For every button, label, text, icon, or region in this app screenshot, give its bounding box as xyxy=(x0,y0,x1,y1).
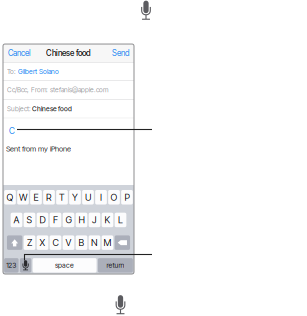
staticText: Z xyxy=(27,237,32,248)
staticText: return xyxy=(106,261,124,270)
staticText: stefanis@apple.com xyxy=(48,86,108,94)
button[interactable]: Delete xyxy=(115,235,130,250)
staticText: T xyxy=(59,192,65,203)
staticText: Y xyxy=(72,192,78,203)
button[interactable]: Y xyxy=(69,190,81,204)
staticText: U xyxy=(85,192,91,203)
button[interactable]: D xyxy=(37,213,48,227)
button[interactable]: B xyxy=(76,235,87,250)
staticText: I xyxy=(100,192,102,203)
button[interactable]: U xyxy=(82,190,94,204)
staticText: Cancel xyxy=(8,48,31,58)
button[interactable]: X xyxy=(37,235,48,250)
staticText: Chinese food xyxy=(31,105,72,113)
staticText: V xyxy=(65,237,71,248)
staticText: Sent from my iPhone xyxy=(6,144,71,153)
staticText: L xyxy=(118,214,123,226)
button[interactable]: Shift xyxy=(7,235,22,250)
button[interactable]: S xyxy=(24,213,35,227)
staticText: J xyxy=(92,214,97,226)
staticText: X xyxy=(39,237,45,248)
staticText: W xyxy=(19,192,27,203)
staticText: D xyxy=(39,214,45,226)
button[interactable]: P xyxy=(121,190,133,204)
staticText: E xyxy=(33,192,38,203)
button[interactable]: L xyxy=(115,213,126,227)
button[interactable]: Z xyxy=(24,235,35,250)
staticText: R xyxy=(46,192,52,203)
staticText: B xyxy=(78,237,84,248)
button[interactable]: E xyxy=(30,190,42,204)
button[interactable]: V xyxy=(63,235,74,250)
staticText: To: xyxy=(7,68,16,76)
button[interactable]: J xyxy=(89,213,100,227)
button[interactable]: 123 xyxy=(4,258,19,273)
button[interactable]: Dictation xyxy=(20,258,31,273)
button[interactable]: R xyxy=(43,190,55,204)
button[interactable]: N xyxy=(89,235,100,250)
button[interactable]: return xyxy=(98,258,133,273)
staticText: Cc/Bcc, From: xyxy=(7,86,48,94)
button[interactable]: C xyxy=(50,235,61,250)
button[interactable]: H xyxy=(76,213,87,227)
button[interactable]: W xyxy=(17,190,29,204)
staticText: K xyxy=(104,214,110,226)
staticText: Send xyxy=(112,48,129,58)
staticText: A xyxy=(13,214,19,226)
button[interactable]: Q xyxy=(4,190,16,204)
button[interactable]: T xyxy=(56,190,68,204)
button[interactable]: space xyxy=(33,258,97,273)
staticText: space xyxy=(55,261,74,270)
staticText: P xyxy=(124,192,129,203)
staticText: Gilbert Solano xyxy=(16,68,59,76)
button[interactable]: K xyxy=(102,213,113,227)
staticText: 123 xyxy=(6,261,16,270)
button[interactable]: O xyxy=(108,190,120,204)
staticText: Subject: xyxy=(7,105,31,113)
staticText: M xyxy=(103,237,111,248)
staticText: C xyxy=(9,126,15,136)
button[interactable]: A xyxy=(11,213,22,227)
staticText: N xyxy=(91,237,98,248)
staticText: S xyxy=(26,214,32,226)
staticText: G xyxy=(65,214,71,226)
button[interactable]: I xyxy=(95,190,107,204)
staticText: C xyxy=(52,237,58,248)
button[interactable]: G xyxy=(63,213,74,227)
button[interactable]: Cancel xyxy=(5,44,34,62)
staticText: F xyxy=(53,214,58,226)
button[interactable]: M xyxy=(102,235,113,250)
staticText: Chinese food xyxy=(46,48,91,58)
staticText: O xyxy=(110,192,117,203)
staticText: H xyxy=(78,214,84,226)
button[interactable]: F xyxy=(50,213,61,227)
button[interactable]: Send xyxy=(109,44,132,62)
staticText: Q xyxy=(6,192,13,203)
